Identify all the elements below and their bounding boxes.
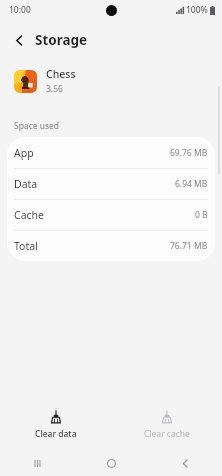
staticText: Chess	[46, 67, 76, 81]
button[interactable]: Clear data	[0, 400, 111, 450]
staticText: Total	[14, 239, 38, 253]
staticText: Clear data	[35, 428, 77, 440]
staticText: 10:00	[9, 4, 31, 16]
button[interactable]: App	[7, 137, 215, 168]
staticText: 0 B	[195, 209, 208, 221]
button[interactable]: Chess	[0, 60, 222, 102]
staticText: 3.56	[46, 83, 63, 95]
button[interactable]: Clear cache	[111, 400, 222, 450]
staticText: Clear cache	[144, 428, 190, 440]
button[interactable]: Recent apps	[0, 450, 74, 476]
staticText: Storage	[35, 31, 88, 49]
staticText: 100%	[186, 4, 208, 16]
button[interactable]: Home	[74, 450, 148, 476]
button[interactable]: Back	[6, 27, 32, 53]
staticText: Cache	[14, 208, 44, 222]
staticText: Space used	[14, 120, 60, 132]
button[interactable]: Data	[7, 169, 215, 199]
staticText: App	[14, 146, 34, 160]
staticText: 69.76 MB	[170, 147, 208, 159]
button[interactable]: Back	[148, 450, 222, 476]
staticText: Data	[14, 177, 38, 191]
staticText: 76.71 MB	[170, 240, 208, 252]
button[interactable]: Total	[7, 231, 215, 261]
button[interactable]: Cache	[7, 200, 215, 230]
staticText: 6.94 MB	[175, 178, 208, 190]
